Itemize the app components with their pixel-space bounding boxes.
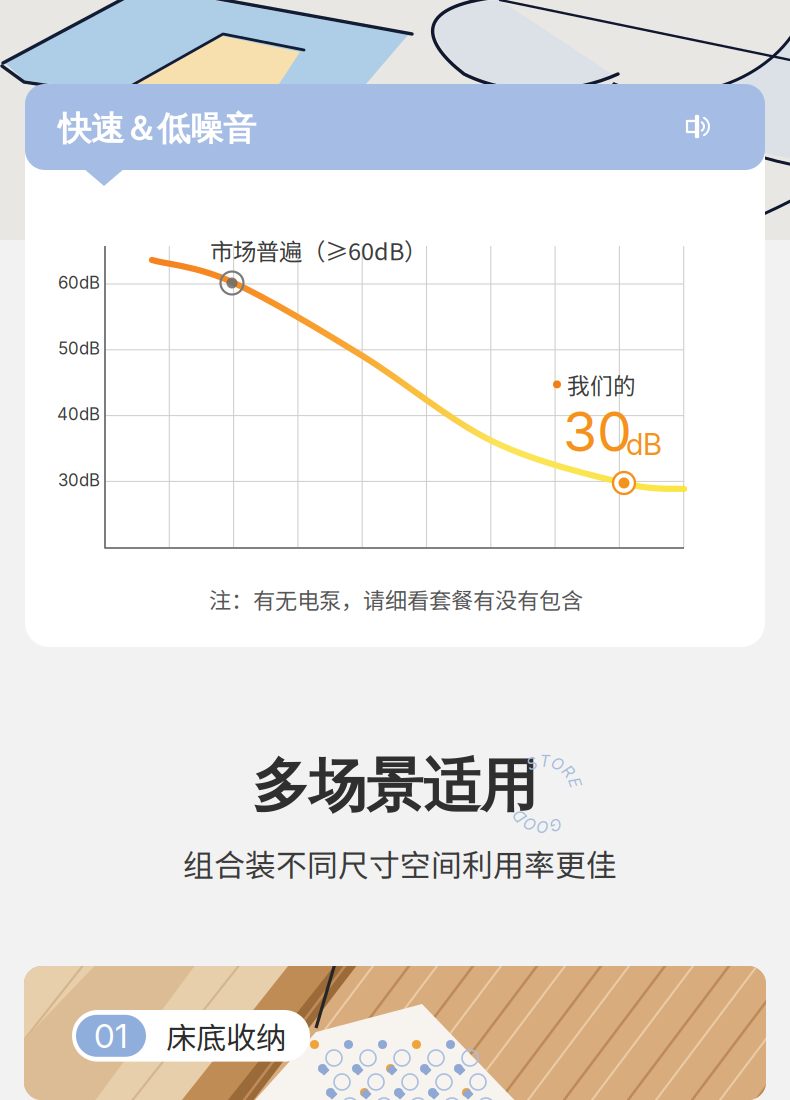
staticText: 30 — [563, 398, 632, 465]
button[interactable]: 快速＆低噪音 — [25, 84, 765, 188]
staticText: 多场景适用 — [252, 750, 537, 822]
staticText: 01 — [94, 1016, 128, 1056]
staticText: 我们的 — [567, 368, 636, 401]
staticText: 40dB — [57, 404, 100, 424]
staticText: 床底收纳 — [166, 1014, 286, 1058]
staticText: O — [537, 817, 549, 837]
staticText: 组合装不同尺寸空间利用率更佳 — [183, 841, 617, 886]
staticText: D — [513, 806, 525, 826]
staticText: G — [550, 815, 562, 834]
staticText: 50dB — [58, 338, 100, 359]
staticText: 注：有无电泵，请细看套餐有没有包含 — [209, 583, 583, 615]
staticText: 市场普遍（≥60dB） — [210, 233, 427, 267]
staticText: 快速＆低噪音 — [58, 108, 256, 150]
staticText: S — [527, 754, 537, 773]
staticText: R — [563, 762, 573, 781]
staticText: 60dB — [58, 272, 100, 293]
staticText: O — [551, 754, 563, 774]
staticText: 30dB — [58, 470, 100, 490]
staticText: dB — [626, 426, 662, 462]
staticText: T — [540, 751, 550, 771]
staticText: E — [570, 773, 580, 792]
staticText: O — [524, 814, 536, 834]
